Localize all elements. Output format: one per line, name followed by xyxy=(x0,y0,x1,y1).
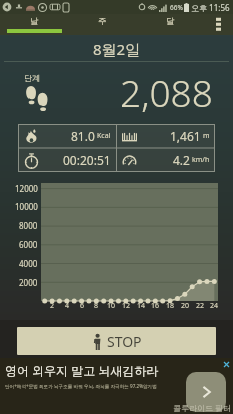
staticText: 4 xyxy=(65,301,70,311)
staticText: 8월2일 xyxy=(93,39,141,59)
staticText: 오후 11:56 xyxy=(191,2,230,13)
button[interactable]: STOP xyxy=(17,327,216,355)
button[interactable]: 00:20:51 xyxy=(24,148,111,172)
staticText: STOP xyxy=(107,332,142,351)
staticText: 6 xyxy=(80,301,85,311)
staticText: 14 xyxy=(137,301,146,311)
staticText: 81.0 xyxy=(71,128,95,144)
button[interactable]: Close ad xyxy=(222,360,231,369)
staticText: 영어 외우지 말고 뇌새김하라 xyxy=(5,362,159,378)
staticText: 2 xyxy=(50,301,55,311)
button[interactable]: 날 xyxy=(0,14,68,35)
staticText: 18 xyxy=(166,301,175,311)
button[interactable]: 영어 외우지 말고 뇌새김하라 xyxy=(0,358,233,414)
button[interactable]: Play video xyxy=(186,372,226,412)
staticText: 콜루라이드 필터 xyxy=(173,402,232,413)
staticText: km/h xyxy=(192,155,210,165)
staticText: 20 xyxy=(181,301,190,311)
staticText: 2000 xyxy=(19,277,38,288)
staticText: 10000 xyxy=(15,201,38,212)
button[interactable]: 4.2 xyxy=(122,148,210,172)
staticText: 6000 xyxy=(19,239,38,250)
staticText: 8 xyxy=(94,301,99,311)
staticText: 12 xyxy=(122,301,131,311)
staticText: 16 xyxy=(151,301,160,311)
button[interactable]: 달 xyxy=(136,14,204,35)
button[interactable]: 주 xyxy=(68,14,136,35)
staticText: 날 xyxy=(30,16,39,27)
button[interactable]: 81.0 xyxy=(24,124,111,148)
button[interactable]: 1,461 xyxy=(122,124,210,148)
staticText: 주 xyxy=(98,16,107,27)
staticText: 00:20:51 xyxy=(63,152,111,168)
staticText: 4.2 xyxy=(173,152,190,168)
staticText: 달 xyxy=(166,16,175,27)
staticText: 2,088 xyxy=(120,67,213,117)
staticText: 10 xyxy=(107,301,116,311)
staticText: 22 xyxy=(196,301,205,311)
staticText: 66% xyxy=(170,3,183,12)
staticText: 1,461 xyxy=(170,128,201,144)
staticText: 8000 xyxy=(19,220,38,231)
staticText: Kcal xyxy=(97,131,111,141)
staticText: 단계 xyxy=(24,73,40,83)
staticText: 24 xyxy=(210,301,219,311)
staticText: 단어+해석+문법 회로가 뇌구조를 바꿔 우뇌, 좌뇌를 자극하는 97.2%암… xyxy=(5,383,157,389)
staticText: m xyxy=(203,131,210,141)
staticText: 4000 xyxy=(19,258,38,269)
staticText: 12000 xyxy=(15,183,38,193)
button[interactable]: More options xyxy=(204,14,233,35)
